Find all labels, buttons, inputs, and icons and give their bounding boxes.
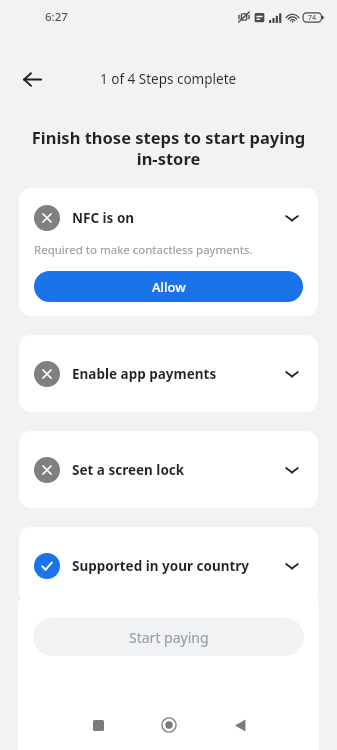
staticText: Start paying (129, 628, 209, 647)
button[interactable]: Enable app payments (19, 335, 318, 412)
other: Expand (281, 555, 303, 577)
staticText: Supported in your country (72, 557, 273, 575)
staticText: Enable app payments (72, 365, 273, 383)
button[interactable]: Supported in your country (19, 527, 318, 604)
staticText: Allow (152, 278, 186, 296)
staticText: 6:27 (45, 9, 68, 25)
button[interactable]: Back (16, 63, 48, 95)
button[interactable]: Allow (34, 271, 303, 302)
button[interactable]: Recent apps (85, 712, 111, 738)
button[interactable]: Set a screen lock (19, 431, 318, 508)
staticText: Finish those steps to start paying in-st… (24, 126, 313, 170)
other: Expand (281, 459, 303, 481)
button[interactable]: Start paying (33, 618, 304, 656)
staticText: Required to make contactless payments. (34, 242, 253, 258)
button[interactable]: Home (156, 712, 182, 738)
staticText: 74 (308, 13, 317, 23)
other: Expand (281, 207, 303, 229)
button[interactable]: Back (227, 712, 253, 738)
staticText: 1 of 4 Steps complete (100, 70, 237, 88)
other: Expand (281, 363, 303, 385)
staticText: NFC is on (72, 209, 273, 227)
staticText: Set a screen lock (72, 461, 273, 479)
button[interactable]: NFC is on (19, 188, 318, 316)
